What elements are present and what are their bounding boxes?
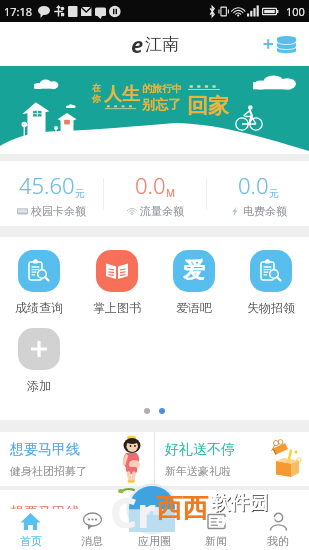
button[interactable]: 爱 xyxy=(155,250,232,315)
staticText: 45.60 xyxy=(19,170,75,200)
staticText: 首页 xyxy=(20,534,42,548)
button[interactable]: 掌上图书 xyxy=(78,250,155,315)
staticText: 西西 xyxy=(156,492,208,525)
button[interactable]: 我的 xyxy=(247,509,309,550)
staticText: 校园卡余额 xyxy=(31,204,86,218)
staticText: 掌上图书 xyxy=(93,300,141,315)
button[interactable]: 失物招领 xyxy=(232,250,309,315)
button[interactable]: 成绩查询 xyxy=(0,250,78,315)
staticText: 新年送豪礼啦 xyxy=(165,464,231,478)
staticText: M xyxy=(166,186,176,200)
staticText: 消息 xyxy=(81,534,103,548)
staticText: 电费余额 xyxy=(243,204,287,218)
staticText: 0.0 xyxy=(238,170,269,200)
button[interactable]: 0.0 xyxy=(207,161,309,226)
staticText: 0.0 xyxy=(135,170,166,200)
staticText: 17:18 xyxy=(4,4,33,19)
staticText: 别忘了 xyxy=(142,96,181,112)
button[interactable]: 添加 xyxy=(0,328,77,393)
staticText: 流量余额 xyxy=(140,204,184,218)
button[interactable]: 45.60 xyxy=(0,161,103,226)
staticText: 江南 xyxy=(145,34,179,55)
staticText: 我的 xyxy=(267,534,289,548)
staticText: 添加 xyxy=(27,378,51,393)
staticText: 健身社团招募了 xyxy=(10,464,87,478)
staticText: 想要马甲线 xyxy=(10,441,80,459)
staticText: e xyxy=(131,29,144,59)
staticText: 新闻 xyxy=(205,534,227,548)
staticText: 在 xyxy=(92,82,101,93)
button[interactable]: 应用圈 xyxy=(123,509,185,550)
staticText: 软件园 xyxy=(211,491,268,515)
staticText: 成绩查询 xyxy=(15,300,63,315)
staticText: 100 xyxy=(286,4,305,19)
staticText: 想要马甲线 xyxy=(10,504,80,522)
staticText: 软件园 xyxy=(212,492,269,516)
staticText: 好礼送不停 xyxy=(165,441,235,459)
staticText: 失物招领 xyxy=(247,300,295,315)
button[interactable]: 好礼送不停 xyxy=(155,432,309,486)
staticText: 的旅行中 xyxy=(142,82,182,95)
staticText: Cr xyxy=(110,483,156,540)
button[interactable]: 首页 xyxy=(0,509,61,550)
button[interactable]: Add card xyxy=(257,28,301,60)
button[interactable]: 0.0 xyxy=(104,161,206,226)
staticText: 回家 xyxy=(187,93,229,119)
staticText: 应用圈 xyxy=(138,534,171,548)
staticText: 元 xyxy=(75,187,85,200)
staticText: 人生 xyxy=(104,83,140,106)
button[interactable]: 新闻 xyxy=(185,509,247,550)
staticText: 爱 xyxy=(183,257,205,285)
staticText: 爱语吧 xyxy=(176,300,212,315)
staticText: 元 xyxy=(269,187,279,200)
staticText: CR173.COM xyxy=(216,513,275,528)
button[interactable]: 消息 xyxy=(61,509,123,550)
button[interactable]: 想要马甲线 xyxy=(0,432,154,486)
staticText: 你 xyxy=(92,93,101,104)
